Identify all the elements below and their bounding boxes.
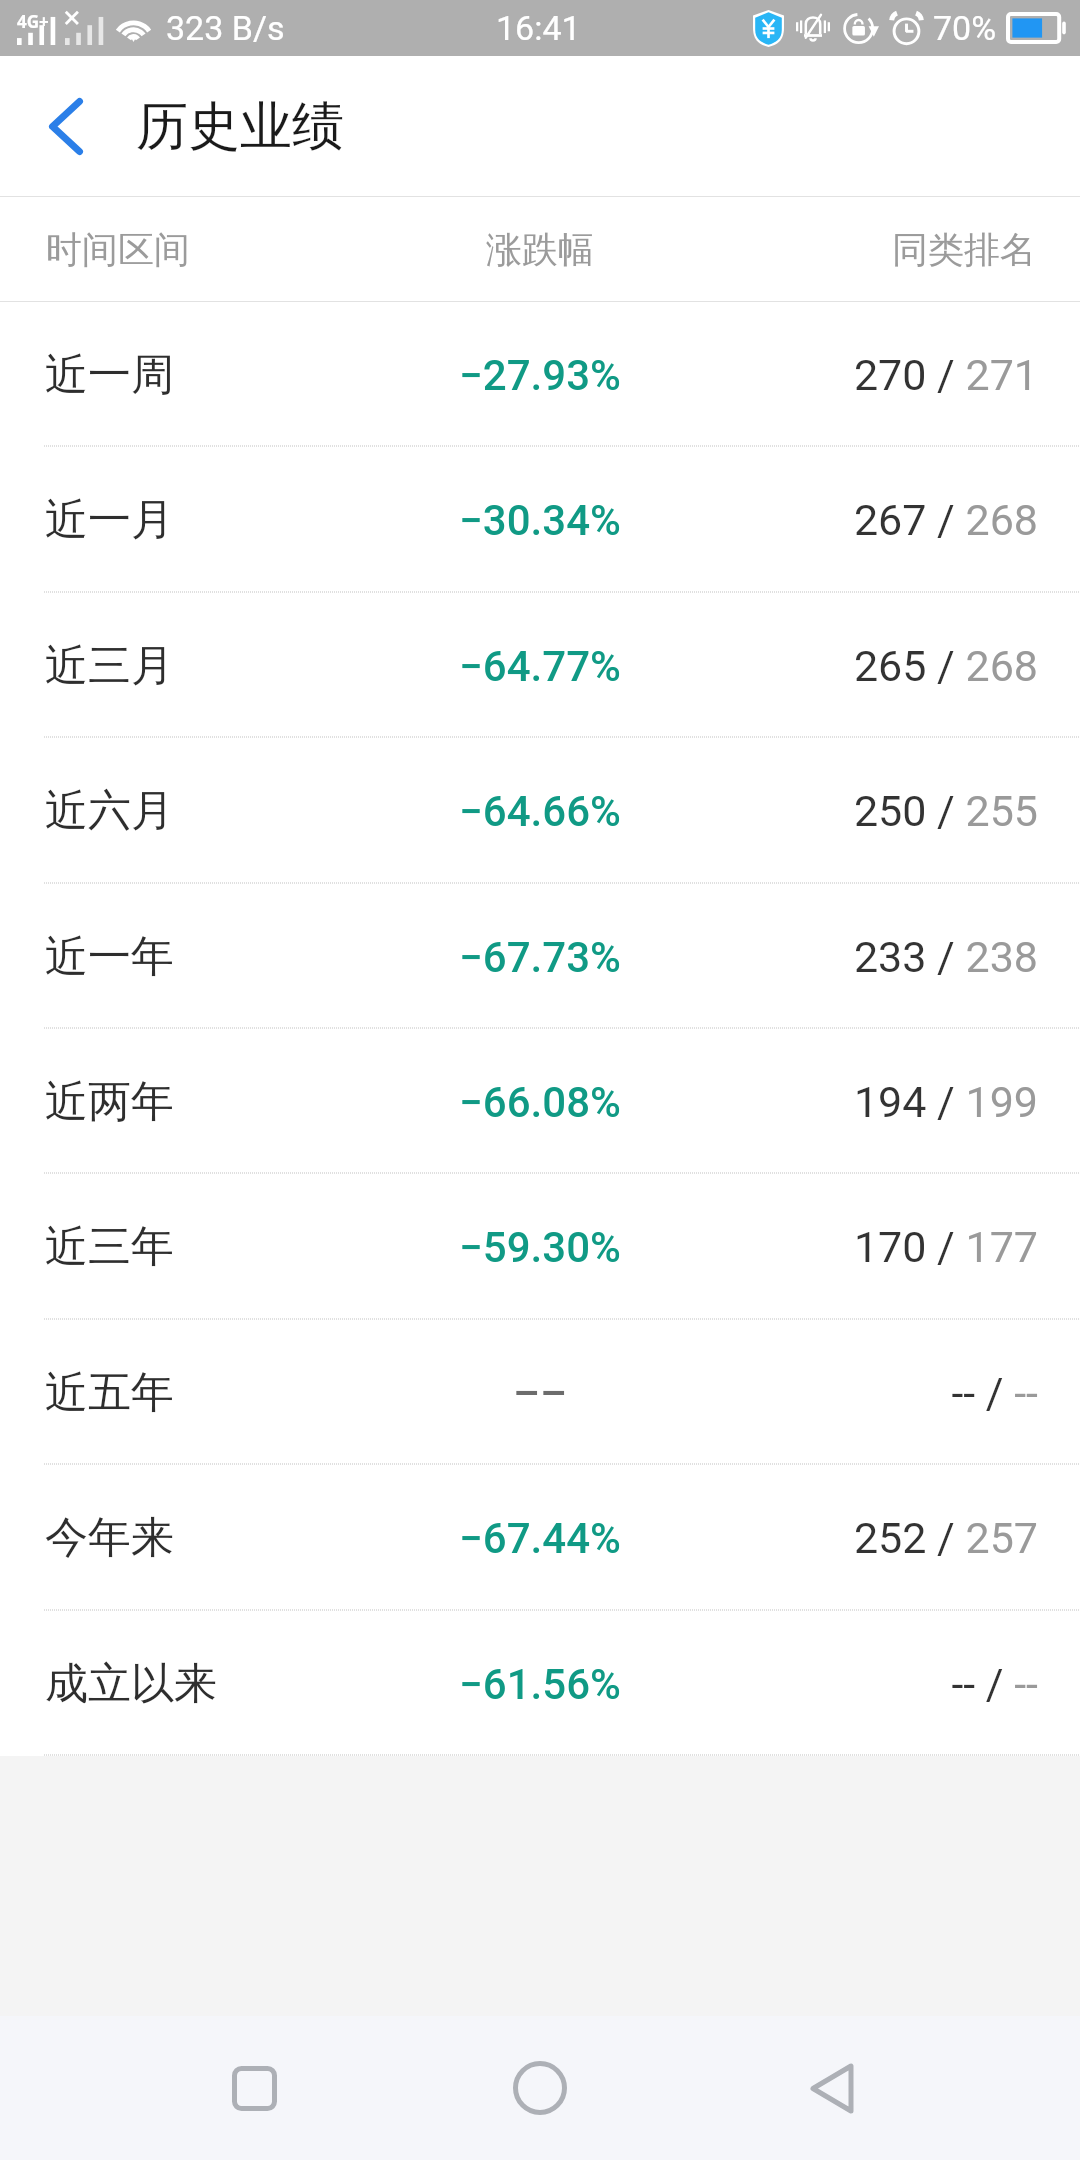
staticText: −67.44% (300, 1514, 780, 1563)
staticText: −30.34% (300, 496, 780, 545)
staticText: 同类排名 (780, 227, 1036, 272)
button[interactable]: 近一周 (0, 302, 1080, 447)
staticText: 4G+ (17, 10, 49, 33)
staticText: 194 / 199 (780, 1077, 1038, 1127)
staticText: −64.77% (300, 642, 780, 691)
staticText: -- / -- (780, 1659, 1038, 1709)
staticText: 近三月 (45, 639, 300, 693)
button[interactable]: 近三年 (0, 1174, 1080, 1320)
staticText: 近一月 (45, 493, 300, 547)
button[interactable]: 近一年 (0, 884, 1080, 1029)
staticText: 涨跌幅 (300, 227, 780, 272)
staticText: 时间区间 (46, 227, 300, 272)
button[interactable]: Home (460, 2016, 620, 2160)
button[interactable]: 近一月 (0, 447, 1080, 593)
staticText: 252 / 257 (780, 1513, 1038, 1563)
staticText: 16:41 (496, 8, 581, 48)
staticText: 233 / 238 (780, 932, 1038, 982)
staticText: 近两年 (45, 1075, 300, 1129)
staticText: 近三年 (45, 1220, 300, 1274)
staticText: 270 / 271 (780, 350, 1038, 400)
button[interactable]: 今年来 (0, 1465, 1080, 1611)
staticText: −66.08% (300, 1078, 780, 1127)
staticText: 成立以来 (45, 1657, 300, 1711)
staticText: 近五年 (45, 1366, 300, 1420)
button[interactable]: 近六月 (0, 738, 1080, 884)
staticText: −59.30% (300, 1223, 780, 1272)
button[interactable]: 近五年 (0, 1320, 1080, 1465)
button[interactable]: Recent apps (174, 2016, 334, 2160)
staticText: −61.56% (300, 1660, 780, 1709)
button[interactable]: 成立以来 (0, 1611, 1080, 1756)
staticText: –– (300, 1369, 780, 1418)
staticText: 265 / 268 (780, 641, 1038, 691)
staticText: −67.73% (300, 933, 780, 982)
staticText: 170 / 177 (780, 1222, 1038, 1272)
button[interactable]: Back (0, 56, 128, 197)
staticText: 250 / 255 (780, 786, 1038, 836)
staticText: 267 / 268 (780, 495, 1038, 545)
staticText: 70% (933, 8, 997, 48)
staticText: 今年来 (45, 1511, 300, 1565)
staticText: 近六月 (45, 784, 300, 838)
staticText: 历史业绩 (136, 94, 344, 160)
button[interactable]: 近三月 (0, 593, 1080, 738)
staticText: 近一周 (45, 348, 300, 402)
staticText: 近一年 (45, 930, 300, 984)
button[interactable]: 近两年 (0, 1029, 1080, 1174)
staticText: 323 B/s (166, 8, 285, 48)
staticText: −64.66% (300, 787, 780, 836)
button[interactable]: Back (746, 2016, 906, 2160)
staticText: −27.93% (300, 351, 780, 400)
staticText: -- / -- (780, 1368, 1038, 1418)
